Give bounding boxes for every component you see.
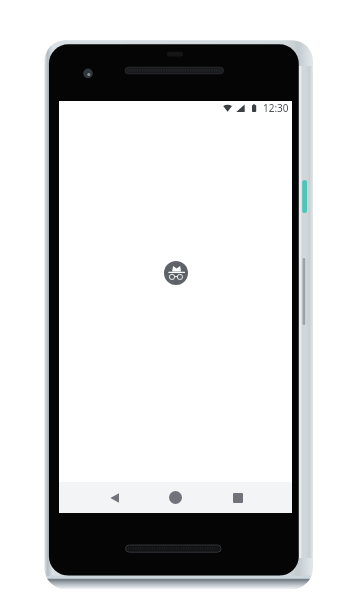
button[interactable]: Back [98,482,130,513]
button[interactable]: Home [159,482,191,513]
button[interactable]: Incognito mode [164,261,188,285]
staticText: 12:30 [263,101,289,115]
button[interactable]: Recent apps [222,482,254,513]
